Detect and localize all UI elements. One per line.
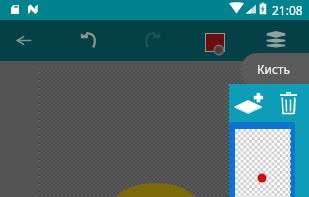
button[interactable]: Add layer	[233, 88, 265, 120]
button[interactable]: Redo	[136, 24, 168, 56]
staticText: Кисть	[257, 61, 290, 77]
button[interactable]	[229, 122, 295, 197]
button[interactable]: Undo	[72, 24, 104, 56]
staticText: 21:08	[272, 2, 303, 18]
button[interactable]: Colour	[197, 24, 231, 58]
button[interactable]: Layers	[260, 25, 292, 57]
button[interactable]: Back	[8, 24, 40, 56]
button[interactable]: Delete layer	[277, 88, 309, 120]
button[interactable]: Кисть	[241, 53, 309, 86]
